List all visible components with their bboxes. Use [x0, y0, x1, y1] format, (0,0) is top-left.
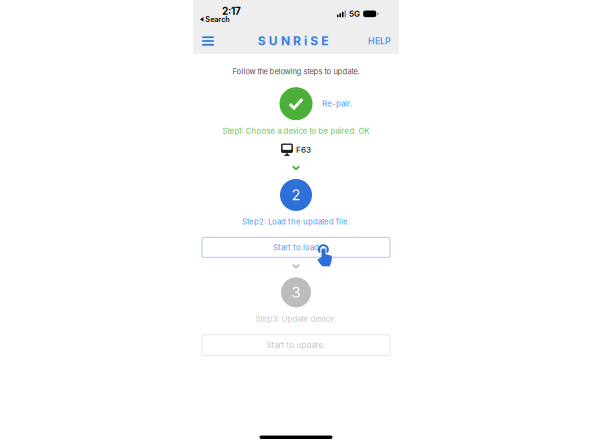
staticText: Step1: Choose a device to be paired. OK	[222, 126, 369, 136]
staticText: HELP	[368, 36, 391, 46]
staticText: 5G	[349, 9, 360, 19]
staticText: Follow the belowing steps to update.	[232, 67, 359, 76]
staticText: S	[310, 34, 318, 48]
staticText: 2:17	[222, 5, 241, 17]
staticText: Search	[205, 15, 229, 24]
staticText: U	[269, 34, 278, 48]
staticText: Step2: Load the updated file.	[242, 217, 350, 226]
button[interactable]: Menu	[195, 28, 221, 54]
staticText: Start to load	[273, 242, 319, 252]
staticText: Re-pair.	[322, 99, 352, 109]
staticText: 2	[291, 186, 300, 204]
staticText: 3	[291, 283, 300, 301]
staticText: Step3: Update device.	[255, 314, 336, 324]
button[interactable]: Start to load	[202, 237, 390, 257]
staticText: i	[304, 34, 307, 48]
button[interactable]: Start to update.	[202, 335, 390, 356]
staticText: S	[258, 34, 266, 48]
staticText: N	[281, 34, 290, 48]
staticText: E	[321, 34, 328, 48]
button[interactable]: Re-pair.	[315, 96, 359, 112]
staticText: F63	[296, 145, 311, 155]
staticText: Start to update.	[266, 340, 325, 350]
staticText: R	[293, 34, 301, 48]
button[interactable]: HELP	[365, 28, 391, 54]
